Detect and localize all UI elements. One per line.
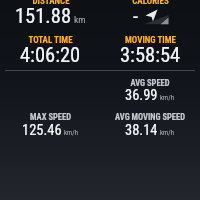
staticText: MAX SPEED (30, 112, 71, 122)
staticText: DISTANCE (32, 0, 70, 7)
button[interactable]: MOVING TIME (80, 35, 200, 70)
button[interactable]: CALORIES (80, 0, 200, 31)
staticText: 38.14 (125, 122, 158, 139)
staticText: km/h (64, 129, 79, 137)
button[interactable]: MAX SPEED (0, 112, 120, 139)
staticText: 3:58:54 (120, 43, 181, 67)
staticText: km/h (160, 94, 175, 102)
staticText: 125.46 (22, 122, 62, 139)
staticText: - (133, 4, 139, 28)
staticText: 4:06:20 (20, 43, 81, 67)
staticText: TOTAL TIME (28, 35, 73, 46)
staticText: 151.88 (15, 4, 72, 28)
staticText: 36.99 (125, 87, 158, 104)
button[interactable]: GPS signal (142, 6, 174, 28)
button[interactable]: AVG SPEED (80, 78, 200, 105)
staticText: km (74, 14, 86, 25)
button[interactable]: DISTANCE (0, 0, 120, 31)
staticText: CALORIES (132, 0, 169, 7)
button[interactable]: AVG MOVING SPEED (80, 112, 200, 139)
button[interactable]: TOTAL TIME (0, 35, 120, 70)
staticText: AVG MOVING SPEED (115, 112, 185, 122)
staticText: MOVING TIME (125, 35, 176, 46)
staticText: km/h (160, 129, 175, 137)
staticText: AVG SPEED (130, 78, 170, 88)
